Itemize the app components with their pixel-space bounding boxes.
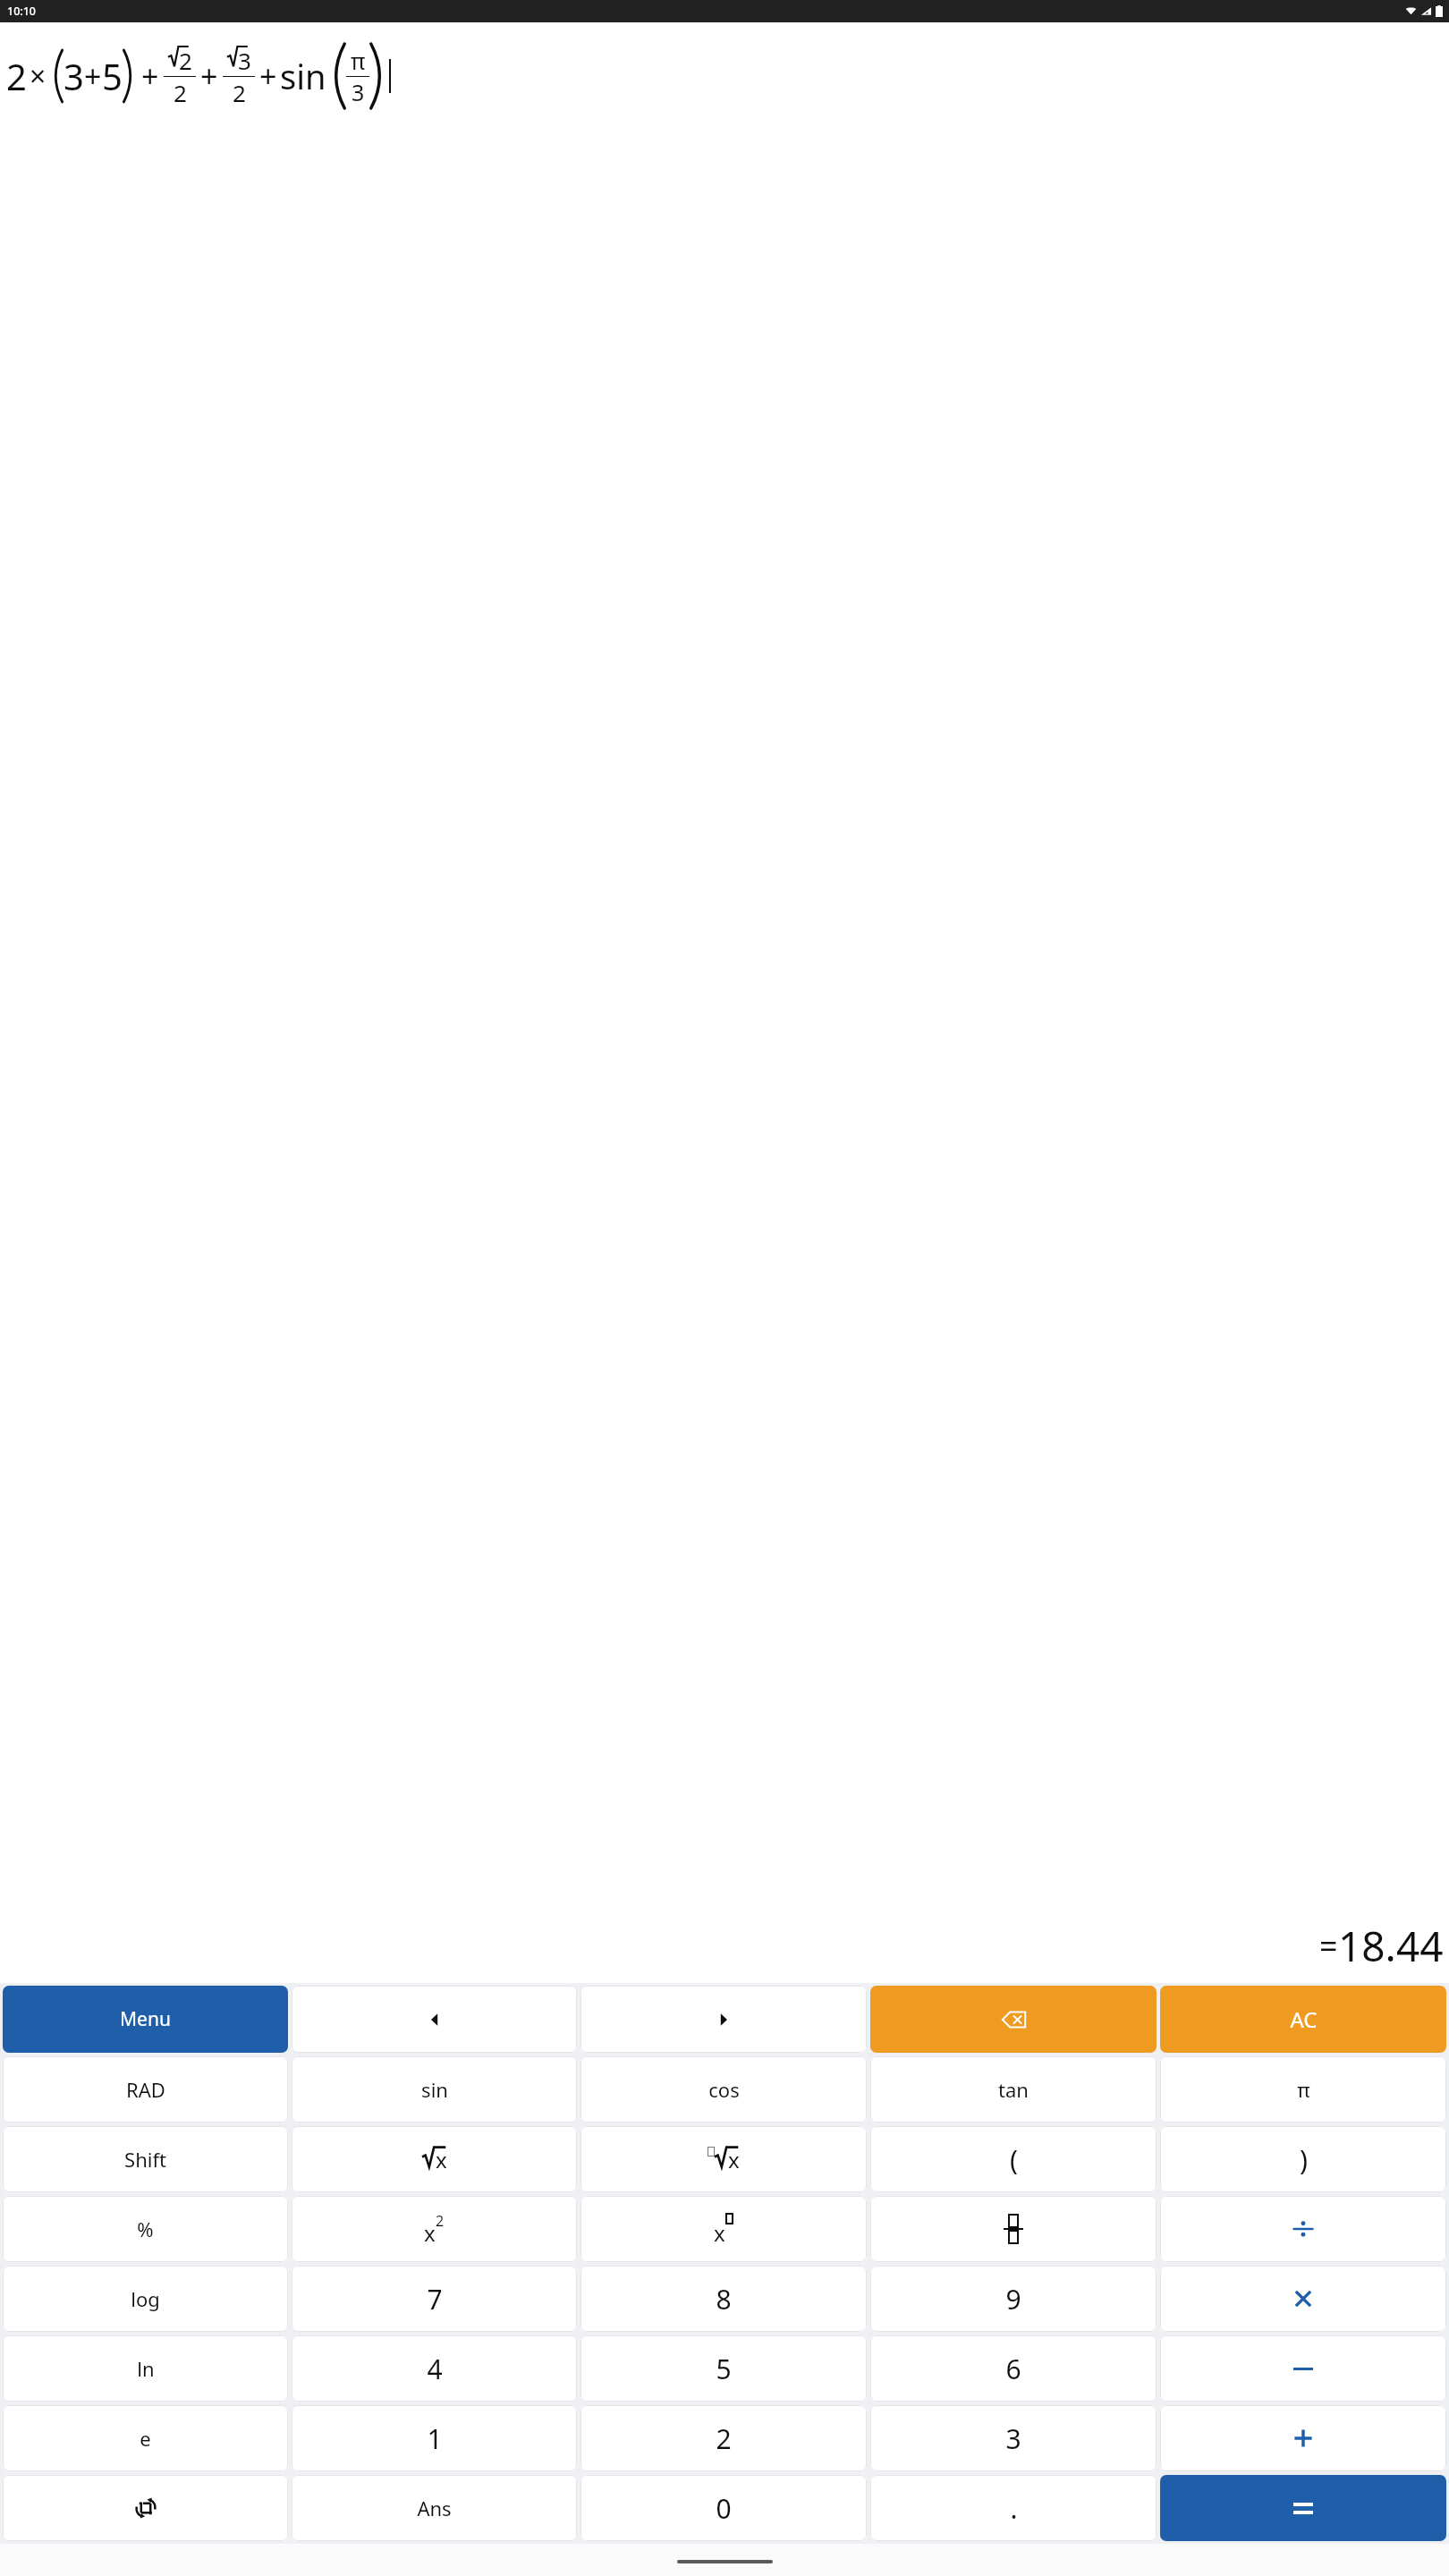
staticText: 10:10 bbox=[7, 4, 37, 19]
staticText: × bbox=[30, 56, 47, 96]
button[interactable]: ln bbox=[3, 2335, 288, 2402]
staticText: 3 bbox=[352, 77, 365, 107]
staticText: RAD bbox=[126, 2076, 165, 2103]
staticText: 6 bbox=[1005, 2351, 1021, 2387]
staticText: 0 bbox=[716, 2490, 732, 2527]
staticText: 9 bbox=[1005, 2281, 1021, 2318]
button[interactable]: x squared bbox=[292, 2196, 577, 2262]
staticText: x bbox=[424, 2218, 436, 2248]
staticText: 2 bbox=[6, 52, 27, 100]
staticText: = bbox=[1319, 1924, 1338, 1968]
staticText: tan bbox=[998, 2076, 1029, 2103]
button[interactable]: 7 bbox=[292, 2266, 577, 2332]
button[interactable]: RAD bbox=[3, 2056, 288, 2123]
staticText: 3 bbox=[1005, 2420, 1021, 2457]
staticText: 2 bbox=[436, 2211, 445, 2231]
staticText: x bbox=[714, 2218, 725, 2248]
staticText: e bbox=[140, 2425, 151, 2452]
staticText: + bbox=[259, 55, 277, 97]
staticText: 5 bbox=[102, 52, 123, 100]
button[interactable]: e bbox=[3, 2405, 288, 2471]
button[interactable]: x to the power bbox=[580, 2196, 867, 2262]
staticText: Shift bbox=[124, 2146, 166, 2173]
staticText: 2 bbox=[174, 77, 187, 108]
staticText: sin bbox=[421, 2076, 448, 2103]
staticText: Ans bbox=[417, 2495, 452, 2521]
staticText: ) bbox=[1300, 2141, 1308, 2178]
button[interactable]: log bbox=[3, 2266, 288, 2332]
staticText: 18.44 bbox=[1338, 1918, 1444, 1974]
button[interactable]: 8 bbox=[580, 2266, 867, 2332]
staticText: 8 bbox=[716, 2281, 732, 2318]
button[interactable]: cos bbox=[580, 2056, 867, 2123]
button[interactable]: . bbox=[870, 2475, 1157, 2541]
button[interactable]: 9 bbox=[870, 2266, 1157, 2332]
button[interactable]: Subtract bbox=[1160, 2335, 1446, 2402]
button[interactable]: 0 bbox=[580, 2475, 867, 2541]
staticText: 1 bbox=[427, 2420, 443, 2457]
button[interactable]: 1 bbox=[292, 2405, 577, 2471]
staticText: Menu bbox=[120, 2006, 171, 2032]
button[interactable]: π bbox=[1160, 2056, 1446, 2123]
button[interactable]: Equals bbox=[1160, 2475, 1446, 2541]
button[interactable]: ) bbox=[1160, 2126, 1446, 2192]
button[interactable]: Nth root bbox=[580, 2126, 867, 2192]
staticText: log bbox=[131, 2285, 160, 2312]
staticText: 2 bbox=[716, 2420, 732, 2457]
button[interactable]: % bbox=[3, 2196, 288, 2262]
staticText: 5 bbox=[716, 2351, 732, 2387]
button[interactable]: 5 bbox=[580, 2335, 867, 2402]
button[interactable]: 2 bbox=[580, 2405, 867, 2471]
button[interactable]: 6 bbox=[870, 2335, 1157, 2402]
staticText: sin bbox=[280, 53, 326, 99]
button[interactable]: 3 bbox=[870, 2405, 1157, 2471]
button[interactable]: Fraction bbox=[870, 2196, 1157, 2262]
staticText: + bbox=[200, 55, 218, 97]
button[interactable]: Menu bbox=[3, 1986, 288, 2053]
staticText: AC bbox=[1290, 2004, 1318, 2034]
button[interactable]: AC bbox=[1160, 1986, 1446, 2053]
button[interactable]: Square root bbox=[292, 2126, 577, 2192]
staticText: π bbox=[1297, 2076, 1310, 2103]
button[interactable]: Multiply bbox=[1160, 2266, 1446, 2332]
staticText: x bbox=[728, 2145, 740, 2174]
button[interactable]: Move cursor right bbox=[580, 1986, 867, 2053]
staticText: 2 bbox=[233, 77, 246, 108]
staticText: 2 bbox=[179, 45, 192, 76]
button[interactable]: Rotate screen bbox=[3, 2475, 288, 2541]
staticText: ln bbox=[137, 2355, 155, 2382]
button[interactable]: ( bbox=[870, 2126, 1157, 2192]
staticText: 3 bbox=[64, 52, 84, 100]
staticText: + bbox=[84, 55, 102, 97]
button[interactable]: Move cursor left bbox=[292, 1986, 577, 2053]
staticText: + bbox=[141, 55, 159, 97]
button[interactable]: 4 bbox=[292, 2335, 577, 2402]
staticText: % bbox=[137, 2216, 154, 2242]
button[interactable]: sin bbox=[292, 2056, 577, 2123]
staticText: π bbox=[351, 46, 366, 76]
staticText: . bbox=[1010, 2490, 1018, 2527]
staticText: 3 bbox=[238, 45, 251, 76]
button[interactable]: Shift bbox=[3, 2126, 288, 2192]
button[interactable]: Ans bbox=[292, 2475, 577, 2541]
staticText: 7 bbox=[427, 2281, 443, 2318]
staticText: cos bbox=[708, 2076, 740, 2103]
button[interactable]: Divide bbox=[1160, 2196, 1446, 2262]
staticText: ( bbox=[1010, 2141, 1018, 2178]
button[interactable]: tan bbox=[870, 2056, 1157, 2123]
staticText: 4 bbox=[427, 2351, 443, 2387]
button[interactable]: Add bbox=[1160, 2405, 1446, 2471]
button[interactable]: Backspace bbox=[870, 1986, 1157, 2053]
staticText: x bbox=[436, 2145, 447, 2174]
